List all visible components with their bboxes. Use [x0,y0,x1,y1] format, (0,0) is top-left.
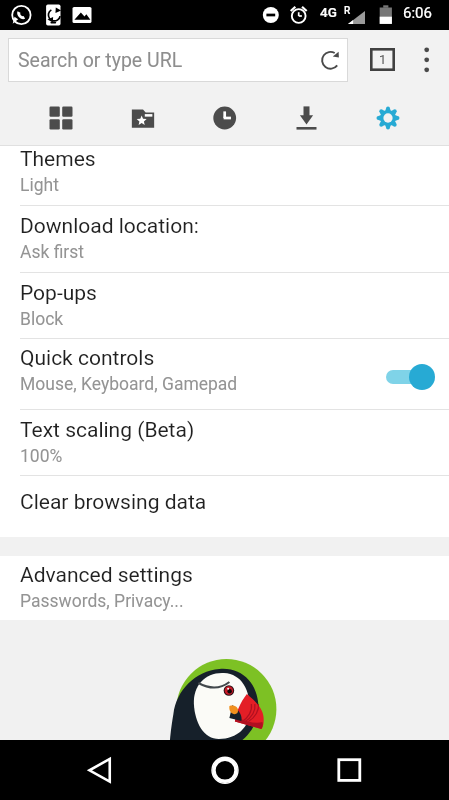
button[interactable]: Recents [320,740,380,800]
staticText: Advanced settings [20,563,193,588]
button[interactable]: Clear browsing data [0,476,449,537]
button[interactable]: Tabs [370,48,395,71]
button[interactable]: Search or type URL [8,38,348,82]
staticText: Passwords, Privacy... [20,591,184,612]
staticText: 4G [320,4,337,20]
button[interactable]: Advanced settings [0,556,449,620]
staticText: Pop-ups [20,281,97,306]
button[interactable]: Home [195,740,255,800]
staticText: 6:06 [403,4,432,22]
button[interactable]: More options [412,45,442,75]
staticText: Ask first [20,242,85,263]
staticText: R [344,5,351,17]
staticText: Block [20,309,64,330]
button[interactable]: Pop-ups [0,273,449,338]
button[interactable]: Text scaling (Beta) [0,410,449,475]
staticText: Light [20,175,59,196]
button[interactable]: Speed dial [20,91,102,146]
staticText: Clear browsing data [20,490,207,515]
button[interactable]: Download location: [0,206,449,272]
staticText: Mouse, Keyboard, Gamepad [20,374,238,395]
staticText: 100% [20,446,63,467]
button[interactable]: Quick controls toggle [380,361,436,393]
staticText: Quick controls [20,346,155,371]
staticText: Search or type URL [18,49,183,72]
button[interactable]: Quick controls [0,339,449,409]
button[interactable]: Bookmarks [184,91,266,146]
staticText: Text scaling (Beta) [20,418,195,443]
staticText: Themes [20,147,96,172]
staticText: Download location: [20,214,199,239]
button[interactable]: Themes [0,146,449,205]
button[interactable]: History [348,91,430,146]
staticText: 1 [379,52,387,67]
button[interactable]: Back [70,740,130,800]
